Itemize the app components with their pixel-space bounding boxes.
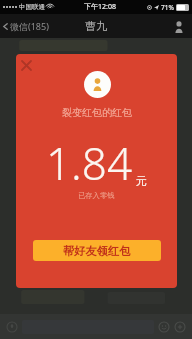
button[interactable]: Voice message [4, 319, 20, 335]
staticText: 裂变红包的红包 [62, 106, 132, 119]
staticText: 帮好友领红包 [63, 244, 131, 258]
staticText: 微信(185) [10, 20, 49, 32]
staticText: 1.84 [46, 133, 133, 193]
staticText: 71% [161, 3, 174, 12]
staticText: 曹九 [85, 19, 107, 33]
staticText: 已存入零钱 [78, 191, 115, 200]
staticText: 元 [136, 174, 147, 188]
button[interactable]: Close [18, 57, 34, 73]
button[interactable]: Emoji [156, 319, 172, 335]
staticText: 下午12:08 [84, 2, 116, 12]
button[interactable]: 微信(185) [0, 16, 53, 36]
staticText: 中国联通 [19, 3, 45, 11]
button[interactable]: Contact info [172, 20, 185, 33]
button[interactable]: 帮好友领红包 [33, 240, 161, 261]
button[interactable]: More [172, 319, 188, 335]
